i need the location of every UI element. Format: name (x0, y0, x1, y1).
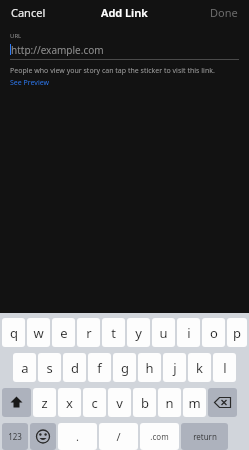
staticText: j (173, 359, 177, 377)
button[interactable]: b (133, 388, 156, 417)
button[interactable]: h (138, 353, 161, 382)
button[interactable]: a (13, 353, 36, 382)
staticText: e (60, 324, 68, 342)
button[interactable]: . (58, 423, 97, 450)
staticText: f (97, 359, 102, 377)
button[interactable]: l (213, 353, 236, 382)
button[interactable]: Shift (2, 388, 31, 417)
button[interactable]: x (58, 388, 81, 417)
button[interactable]: f (88, 353, 111, 382)
staticText: r (86, 324, 92, 342)
staticText: z (41, 394, 48, 412)
staticText: Done (210, 5, 238, 20)
button[interactable]: q (2, 318, 25, 347)
staticText: y (135, 324, 142, 342)
button[interactable]: e (52, 318, 75, 347)
button[interactable]: n (158, 388, 181, 417)
staticText: s (46, 359, 53, 377)
button[interactable]: g (113, 353, 136, 382)
button[interactable]: o (202, 318, 225, 347)
button[interactable]: t (102, 318, 125, 347)
staticText: c (91, 394, 98, 412)
staticText: i (187, 324, 191, 342)
button[interactable]: r (77, 318, 100, 347)
button[interactable]: i (177, 318, 200, 347)
button[interactable]: m (183, 388, 206, 417)
staticText: w (33, 324, 44, 342)
staticText: / (116, 429, 121, 444)
staticText: x (66, 394, 73, 412)
staticText: o (210, 324, 218, 342)
staticText: return (193, 431, 217, 442)
staticText: d (71, 359, 79, 377)
button[interactable]: 123 (2, 423, 28, 450)
staticText: l (223, 359, 227, 377)
button[interactable]: Backspace (208, 388, 237, 417)
staticText: a (21, 359, 29, 377)
staticText: v (116, 394, 123, 412)
button[interactable]: y (127, 318, 150, 347)
button[interactable]: j (163, 353, 186, 382)
staticText: People who view your story can tap the s… (10, 66, 215, 76)
staticText: .com (150, 431, 169, 442)
staticText: u (159, 324, 168, 342)
staticText: p (233, 324, 241, 342)
staticText: g (121, 359, 129, 377)
staticText: URL (10, 32, 22, 40)
staticText: q (10, 324, 18, 342)
staticText: Add Link (101, 5, 148, 20)
staticText: See Preview (10, 78, 50, 88)
button[interactable]: p (227, 318, 247, 347)
button[interactable]: s (38, 353, 61, 382)
staticText: k (196, 359, 203, 377)
staticText: 123 (8, 431, 22, 442)
button[interactable]: z (33, 388, 56, 417)
button[interactable]: w (27, 318, 50, 347)
staticText: t (111, 324, 116, 342)
button[interactable]: d (63, 353, 86, 382)
button[interactable]: v (108, 388, 131, 417)
staticText: b (141, 394, 149, 412)
staticText: . (76, 429, 79, 444)
button[interactable]: http://example.com (10, 43, 239, 56)
button[interactable]: Cancel (8, 2, 49, 23)
staticText: m (188, 394, 201, 412)
button[interactable]: Emoji (30, 423, 56, 450)
button[interactable]: c (83, 388, 106, 417)
button[interactable]: / (99, 423, 138, 450)
button[interactable]: return (181, 423, 228, 450)
staticText: h (145, 359, 154, 377)
button[interactable]: k (188, 353, 211, 382)
staticText: n (165, 394, 174, 412)
button[interactable]: Done (207, 2, 241, 23)
staticText: Cancel (11, 5, 46, 20)
button[interactable]: See Preview (10, 78, 50, 88)
button[interactable]: .com (140, 423, 179, 450)
button[interactable]: u (152, 318, 175, 347)
staticText: http://example.com (11, 43, 104, 56)
